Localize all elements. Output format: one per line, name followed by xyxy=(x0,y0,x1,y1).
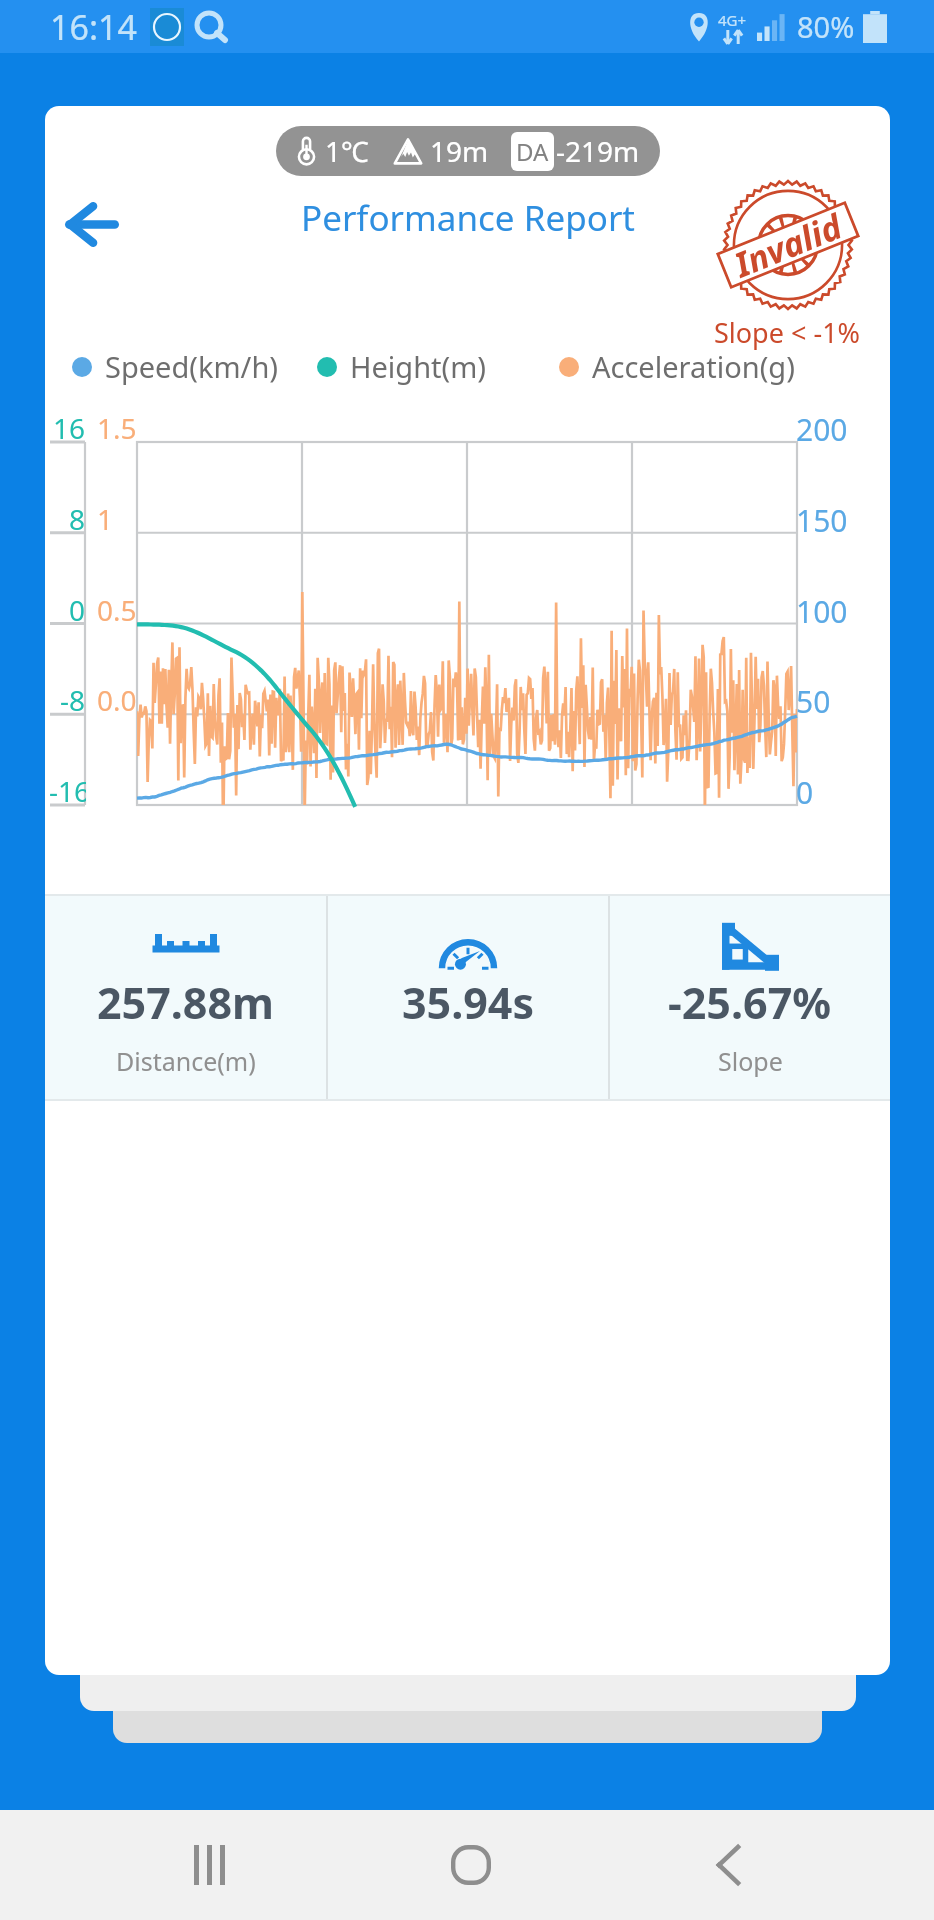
button[interactable]: Recent apps xyxy=(163,1810,255,1920)
staticText: 1.5 xyxy=(97,409,137,447)
staticText: 80% xyxy=(797,7,855,46)
staticText: 100 xyxy=(796,591,848,632)
button[interactable]: Back xyxy=(47,179,137,269)
staticText: Invalid xyxy=(727,203,849,287)
staticText: 1℃ xyxy=(325,132,369,170)
staticText: 0 xyxy=(69,591,86,629)
staticText: Height(m) xyxy=(350,347,487,386)
staticText: 1 xyxy=(97,500,114,538)
button[interactable]: 257.88m xyxy=(45,896,326,1099)
button[interactable]: 1℃ xyxy=(276,126,660,176)
staticText: 16 xyxy=(53,409,86,447)
staticText: -16 xyxy=(49,772,86,810)
button[interactable]: 35.94s xyxy=(328,896,608,1099)
staticText: 150 xyxy=(796,500,848,541)
button[interactable]: Back xyxy=(682,1810,774,1920)
staticText: Acceleration(g) xyxy=(592,347,795,386)
staticText: Distance(m) xyxy=(116,1044,256,1078)
staticText: DA xyxy=(516,135,549,168)
staticText: 4G+ xyxy=(718,10,747,30)
staticText: -8 xyxy=(60,681,86,719)
button[interactable]: -25.67% xyxy=(610,896,890,1099)
staticText: Slope xyxy=(718,1044,783,1078)
staticText: 19m xyxy=(430,132,489,170)
staticText: 0 xyxy=(796,772,814,813)
staticText: 200 xyxy=(796,409,848,450)
staticText: 8 xyxy=(69,500,86,538)
staticText: 0.5 xyxy=(97,591,137,629)
staticText: Speed(km/h) xyxy=(105,347,279,386)
staticText: Performance Report xyxy=(301,194,635,242)
staticText: 35.94s xyxy=(402,973,535,1032)
staticText: 50 xyxy=(796,681,831,722)
staticText: 0.0 xyxy=(97,681,137,719)
staticText: Slope < -1% xyxy=(714,314,861,351)
staticText: 16:14 xyxy=(50,4,137,50)
staticText: 257.88m xyxy=(97,973,274,1032)
staticText: -25.67% xyxy=(668,973,832,1032)
button[interactable]: Home xyxy=(425,1810,517,1920)
staticText: -219m xyxy=(556,132,640,170)
